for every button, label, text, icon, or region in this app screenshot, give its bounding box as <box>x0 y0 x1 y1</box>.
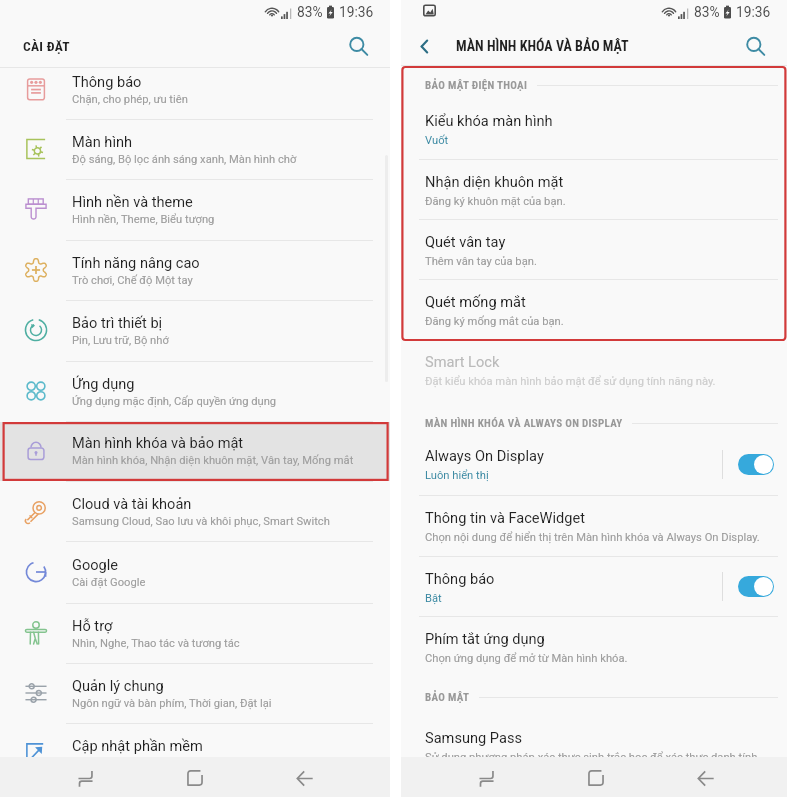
staticText: Quét mống mắt <box>425 293 526 310</box>
button[interactable]: Toggle Always On Display <box>738 454 774 475</box>
staticText: Đăng ký mống mắt của bạn. <box>425 315 564 328</box>
staticText: Vuốt <box>425 134 449 147</box>
staticText: 83% <box>694 4 720 20</box>
staticText: 83% <box>297 4 323 20</box>
button[interactable]: Search <box>739 30 771 62</box>
button[interactable]: Màn hình khóa và bảo mật <box>0 422 390 481</box>
button[interactable]: Cloud và tài khoản <box>0 482 390 542</box>
staticText: Ứng dụng mặc định, Cấp quyền ứng dụng <box>72 395 277 408</box>
staticText: Tính năng nâng cao <box>72 254 200 271</box>
staticText: Phím tắt ứng dụng <box>425 630 545 647</box>
staticText: Smart Lock <box>425 353 500 370</box>
staticText: Hình nền, Theme, Biểu tượng <box>72 213 215 226</box>
staticText: Hình nền và theme <box>72 193 193 210</box>
staticText: 19:36 <box>339 4 374 20</box>
button[interactable]: Tính năng nâng cao <box>0 241 390 301</box>
staticText: Chọn nội dung để hiển thị trên Màn hình … <box>425 531 760 544</box>
button[interactable]: Home <box>177 760 213 796</box>
button[interactable]: Thông báo <box>401 557 787 616</box>
staticText: Nhận diện khuôn mặt <box>425 173 564 190</box>
button[interactable]: Google <box>0 542 390 603</box>
staticText: Thông báo <box>72 73 142 90</box>
staticText: BẢO MẬT ĐIỆN THOẠI <box>425 79 528 92</box>
button[interactable]: Back <box>409 31 439 61</box>
staticText: Cập nhật phần mềm <box>72 737 203 754</box>
button[interactable]: Cập nhật phần mềm <box>0 724 390 757</box>
staticText: Quản lý chung <box>72 677 164 694</box>
staticText: Đăng ký khuôn mặt của bạn. <box>425 195 566 208</box>
staticText: Google <box>72 556 119 573</box>
button[interactable]: Back <box>287 760 323 796</box>
staticText: Chọn ứng dụng để mở từ Màn hình khóa. <box>425 652 628 665</box>
button[interactable]: Toggle Thông báo <box>738 576 774 597</box>
button[interactable]: Quét vân tay <box>401 220 787 279</box>
staticText: Nhìn, Nghe, Thao tác và tương tác <box>72 637 240 650</box>
staticText: Màn hình <box>72 133 133 150</box>
staticText: Samsung Pass <box>425 729 522 746</box>
staticText: Quét vân tay <box>425 233 506 250</box>
staticText: Luôn hiển thị <box>425 469 489 482</box>
staticText: Thêm vân tay của bạn. <box>425 255 537 268</box>
button[interactable]: Thông tin và FaceWidget <box>401 496 787 556</box>
staticText: MÀN HÌNH KHÓA VÀ ALWAYS ON DISPLAY <box>425 417 623 430</box>
button[interactable]: Samsung Pass <box>401 716 787 760</box>
staticText: Thông tin và FaceWidget <box>425 509 586 526</box>
staticText: Bật <box>425 592 442 605</box>
staticText: Trò chơi, Chế độ Một tay <box>72 274 193 287</box>
staticText: 19:36 <box>736 4 771 20</box>
staticText: Bảo trì thiết bị <box>72 314 163 331</box>
button[interactable]: Back <box>688 760 724 796</box>
staticText: Cloud và tài khoản <box>72 495 192 512</box>
staticText: Ngôn ngữ và bàn phím, Thời gian, Đặt lại <box>72 697 272 710</box>
button[interactable]: Recent apps <box>468 760 504 796</box>
staticText: Kiểu khóa màn hình <box>425 112 553 129</box>
button[interactable]: Phím tắt ứng dụng <box>401 617 787 677</box>
staticText: Chặn, cho phép, ưu tiên <box>72 93 188 106</box>
button[interactable]: Always On Display <box>401 434 787 495</box>
button[interactable]: Nhận diện khuôn mặt <box>401 160 787 219</box>
button[interactable]: Hỗ trợ <box>0 604 390 663</box>
button[interactable]: Recent apps <box>67 760 103 796</box>
staticText: Pin, Lưu trữ, Bộ nhớ <box>72 334 169 347</box>
staticText: CÀI ĐẶT <box>23 38 70 54</box>
staticText: Đặt kiểu khóa màn hình bảo mật để sử dụn… <box>425 375 716 388</box>
button[interactable]: Search <box>342 30 374 62</box>
button[interactable]: Ứng dụng <box>0 362 390 422</box>
staticText: Samsung Cloud, Sao lưu và khôi phục, Sma… <box>72 515 330 528</box>
staticText: Sử dụng phương pháp xác thực sinh trắc h… <box>425 751 758 760</box>
staticText: MÀN HÌNH KHÓA VÀ BẢO MẬT <box>456 38 629 54</box>
button[interactable]: Home <box>578 760 614 796</box>
staticText: Ứng dụng <box>72 375 135 392</box>
button[interactable]: Hình nền và theme <box>0 180 390 240</box>
button[interactable]: Quét mống mắt <box>401 280 787 339</box>
staticText: Cài đặt Google <box>72 576 146 589</box>
button[interactable]: Thông báo <box>0 68 390 119</box>
staticText: Always On Display <box>425 447 544 464</box>
button[interactable]: Quản lý chung <box>0 664 390 724</box>
button[interactable]: Kiểu khóa màn hình <box>401 99 787 159</box>
staticText: Hỗ trợ <box>72 617 113 634</box>
button[interactable]: Màn hình <box>0 120 390 179</box>
staticText: Thông báo <box>425 570 495 587</box>
staticText: Độ sáng, Bộ lọc ánh sáng xanh, Màn hình … <box>72 153 297 166</box>
staticText: Màn hình khóa và bảo mật <box>72 434 244 451</box>
staticText: Màn hình khóa, Nhận diện khuôn mặt, Vân … <box>72 454 354 467</box>
button[interactable]: Bảo trì thiết bị <box>0 301 390 361</box>
button[interactable]: Smart Lock <box>401 340 787 399</box>
staticText: BẢO MẬT <box>425 691 470 704</box>
